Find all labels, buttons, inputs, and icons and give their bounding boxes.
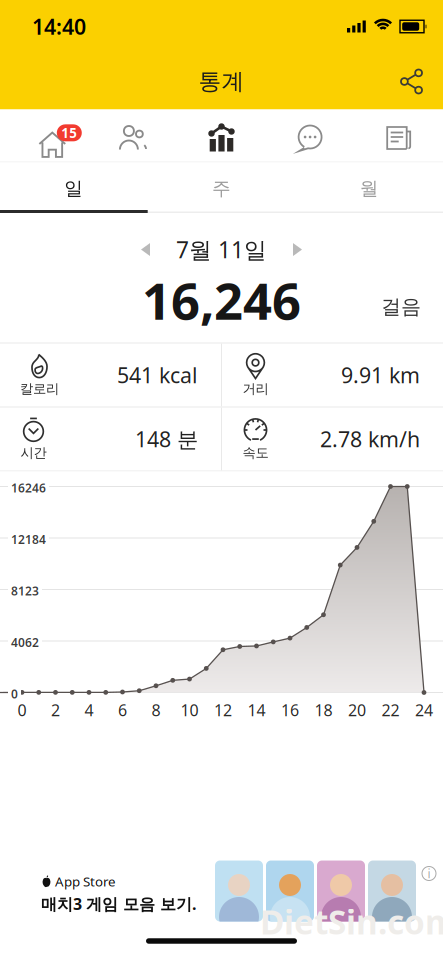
- staticText: 4062: [11, 634, 39, 650]
- staticText: 4: [84, 699, 93, 721]
- staticText: i: [427, 865, 430, 881]
- staticText: 6: [118, 699, 127, 721]
- staticText: 12: [214, 699, 232, 721]
- staticText: 15: [61, 124, 77, 142]
- staticText: 2: [51, 699, 60, 721]
- staticText: 148 분: [135, 425, 198, 453]
- staticText: 16: [281, 699, 299, 721]
- staticText: 매치3 게임 모음 보기.: [41, 893, 196, 914]
- button[interactable]: 매치3 게임 모음 보기: [0, 855, 443, 926]
- button[interactable]: Home: [0, 118, 89, 158]
- button[interactable]: Share: [401, 55, 443, 107]
- staticText: 7월 11일: [176, 234, 267, 265]
- staticText: 18: [314, 699, 332, 721]
- staticText: 0: [17, 699, 26, 721]
- staticText: 통계: [198, 68, 244, 95]
- button[interactable]: Friends: [89, 123, 177, 153]
- staticText: 8: [151, 699, 160, 721]
- staticText: 칼로리: [20, 380, 59, 397]
- staticText: 시간: [20, 444, 46, 461]
- button[interactable]: Statistics: [177, 123, 266, 153]
- button[interactable]: 월: [295, 164, 443, 213]
- staticText: 8123: [11, 583, 39, 599]
- staticText: 거리: [242, 380, 268, 397]
- button[interactable]: Next day: [293, 243, 302, 256]
- staticText: 10: [180, 699, 198, 721]
- staticText: 월: [360, 177, 379, 200]
- staticText: 0: [11, 686, 18, 702]
- staticText: 2.78 km/h: [320, 425, 420, 453]
- staticText: 12184: [11, 531, 46, 547]
- staticText: 걸음: [381, 294, 421, 319]
- staticText: App Store: [55, 872, 116, 890]
- button[interactable]: Ad information: [419, 863, 439, 883]
- button[interactable]: News: [354, 123, 443, 153]
- staticText: 주: [212, 177, 231, 200]
- staticText: 541 kcal: [117, 361, 198, 389]
- staticText: 9.91 km: [341, 361, 420, 389]
- staticText: 16246: [11, 480, 46, 496]
- staticText: 14: [247, 699, 265, 721]
- staticText: 24: [415, 699, 433, 721]
- staticText: 20: [348, 699, 366, 721]
- staticText: 14:40: [32, 12, 86, 41]
- button[interactable]: 주: [148, 164, 295, 213]
- staticText: 속도: [242, 444, 268, 461]
- button[interactable]: Chat: [266, 123, 354, 153]
- staticText: DietSin.com: [260, 899, 443, 944]
- button[interactable]: 일: [0, 164, 148, 213]
- button[interactable]: Previous day: [141, 243, 150, 256]
- staticText: 일: [64, 177, 83, 200]
- staticText: 22: [381, 699, 399, 721]
- staticText: 16,246: [142, 266, 301, 334]
